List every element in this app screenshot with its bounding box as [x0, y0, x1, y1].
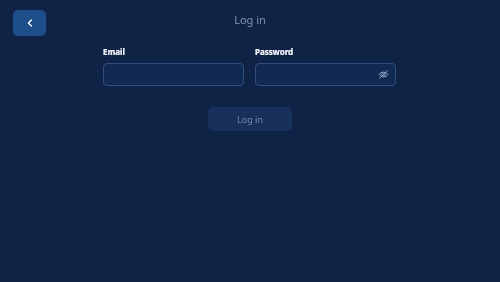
staticText: Log in [237, 113, 263, 125]
staticText: Email [103, 46, 125, 57]
button[interactable]: Log in [208, 107, 292, 131]
button[interactable]: Show password [377, 68, 390, 81]
button[interactable]: Show password [255, 63, 396, 86]
staticText: Log in [234, 12, 266, 27]
staticText: Password [255, 46, 294, 57]
button[interactable] [103, 63, 244, 86]
button[interactable]: Back [13, 10, 46, 36]
